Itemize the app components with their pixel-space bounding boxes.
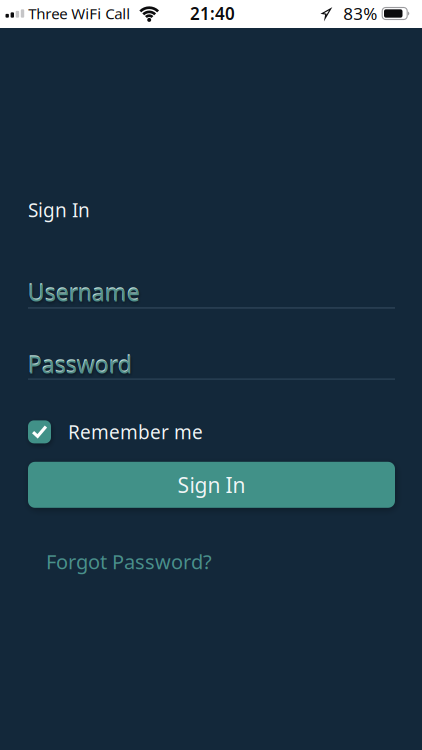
button[interactable]: Username text field: [28, 277, 395, 310]
button[interactable]: Password text field: [28, 349, 395, 382]
staticText: Username: [27, 276, 139, 307]
button[interactable]: Sign In: [28, 462, 395, 508]
staticText: Password: [28, 349, 132, 380]
staticText: 83%: [343, 2, 377, 25]
staticText: 21:40: [190, 2, 235, 25]
staticText: Password: [27, 348, 131, 379]
staticText: Sign In: [28, 197, 90, 223]
staticText: Username: [28, 277, 140, 308]
button[interactable]: Remember me: [28, 419, 203, 445]
staticText: Forgot Password?: [46, 548, 212, 575]
button[interactable]: Forgot Password?: [46, 548, 212, 575]
staticText: Remember me: [68, 419, 203, 445]
staticText: Three WiFi Call: [28, 3, 130, 24]
staticText: Sign In: [177, 470, 245, 499]
